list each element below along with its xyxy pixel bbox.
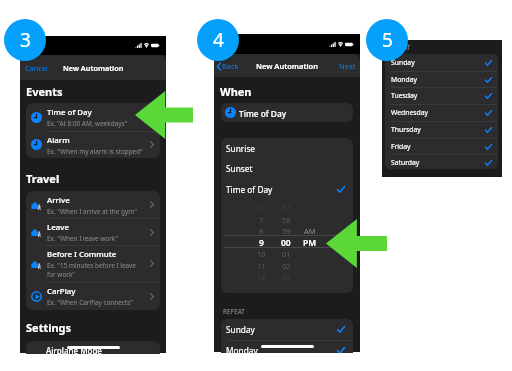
staticText: Leave — [47, 222, 69, 233]
staticText: Ex. "15 minutes before I leave — [47, 261, 136, 270]
staticText: PM — [303, 237, 317, 249]
staticText: Time of Day — [47, 107, 92, 118]
staticText: Monday — [226, 345, 258, 353]
staticText: New Automation — [63, 63, 124, 73]
staticText: Wednesday — [391, 108, 428, 117]
button[interactable]: CarPlay — [26, 282, 160, 310]
staticText: 7 — [259, 215, 264, 225]
button[interactable]: Before I Commute — [26, 245, 160, 281]
staticText: Airplane Mode — [46, 345, 102, 354]
staticText: 5 — [382, 27, 393, 53]
button[interactable]: Sunday — [221, 319, 353, 340]
button[interactable]: Next — [335, 57, 360, 75]
button[interactable]: Arrive — [26, 191, 160, 218]
staticText: Time of Day — [226, 184, 273, 195]
staticText: 8 — [259, 226, 264, 236]
staticText: Ex. "When CarPlay connects" — [47, 298, 133, 307]
button[interactable]: Time of Day — [26, 103, 160, 131]
button[interactable]: Alarm — [26, 131, 160, 158]
staticText: Travel — [26, 171, 60, 186]
staticText: Time of Day — [239, 108, 287, 119]
staticText: 11 — [257, 261, 266, 271]
staticText: Next — [339, 61, 356, 71]
staticText: REPEAT — [389, 43, 411, 51]
staticText: Settings — [26, 320, 72, 335]
staticText: Ex. "When I leave work" — [47, 234, 118, 243]
staticText: 4 — [213, 27, 224, 53]
staticText: New Automation — [256, 61, 319, 71]
button[interactable]: Sunday — [385, 54, 498, 71]
staticText: 10 — [257, 249, 266, 259]
button[interactable]: Sunrise — [221, 138, 353, 158]
button[interactable]: Leave — [26, 218, 160, 246]
staticText: 03 — [282, 272, 291, 282]
button[interactable]: Step 5 — [366, 19, 408, 61]
button[interactable]: Monday — [221, 340, 353, 353]
staticText: REPEAT — [223, 307, 245, 316]
staticText: Back — [222, 61, 239, 71]
staticText: Ex. "At 8:00 AM, weekdays" — [47, 119, 128, 128]
button[interactable]: Sunset — [221, 158, 353, 178]
button[interactable]: Time of Day — [221, 103, 353, 122]
staticText: for work" — [47, 270, 75, 279]
button[interactable]: Friday — [385, 138, 498, 155]
staticText: Before I Commute — [47, 249, 117, 260]
staticText: Ex. "When my alarm is stopped" — [47, 147, 143, 156]
staticText: Sunday — [391, 58, 415, 67]
staticText: Sunrise — [226, 143, 256, 154]
staticText: Thursday — [391, 125, 421, 134]
button[interactable]: Saturday — [385, 154, 498, 169]
staticText: Sunday — [226, 324, 255, 335]
staticText: Tuesday — [391, 91, 418, 100]
staticText: 6 — [259, 203, 264, 213]
staticText: AM — [304, 226, 316, 236]
button[interactable]: Thursday — [385, 121, 498, 138]
staticText: 3 — [20, 27, 31, 53]
button[interactable]: Wednesday — [385, 104, 498, 121]
staticText: 57 — [282, 203, 291, 213]
staticText: Sunset — [226, 163, 253, 174]
staticText: When — [220, 84, 252, 99]
staticText: Saturday — [391, 158, 420, 167]
staticText: Events — [26, 84, 63, 99]
staticText: Ex. "When I arrive at the gym" — [47, 207, 137, 216]
staticText: Arrive — [47, 195, 70, 206]
button[interactable]: Time of Day — [221, 179, 353, 199]
staticText: Alarm — [47, 135, 70, 146]
staticText: 01 — [282, 249, 291, 259]
staticText: 02 — [282, 261, 291, 271]
staticText: Monday — [391, 75, 417, 84]
staticText: 00 — [281, 237, 291, 249]
staticText: 9 — [259, 237, 264, 249]
button[interactable]: Cancel — [20, 58, 52, 78]
staticText: 59 — [282, 226, 291, 236]
button[interactable]: Back — [214, 57, 243, 75]
staticText: 12 — [257, 272, 266, 282]
button[interactable]: Step 4 — [197, 19, 239, 61]
button[interactable]: Monday — [385, 71, 498, 88]
staticText: Cancel — [25, 63, 48, 73]
staticText: 58 — [282, 215, 291, 225]
staticText: Friday — [391, 142, 411, 151]
button[interactable]: Step 3 — [4, 19, 46, 61]
button[interactable]: Tuesday — [385, 87, 498, 104]
staticText: CarPlay — [47, 286, 76, 297]
